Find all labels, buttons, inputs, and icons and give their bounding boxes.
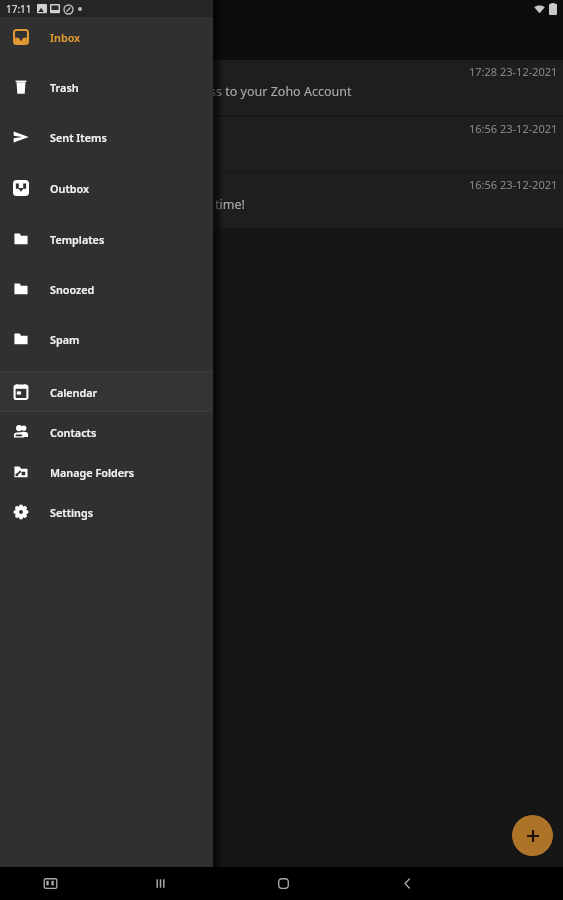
staticText: Contacts	[50, 425, 97, 440]
button[interactable]: Sent Items	[0, 117, 213, 157]
button[interactable]: Contacts	[0, 412, 213, 452]
button[interactable]: 16:56 23-12-2021	[0, 173, 563, 228]
button[interactable]: Settings	[0, 492, 213, 532]
staticText: 16:56 23-12-2021	[469, 177, 558, 192]
staticText: Sent Items	[50, 130, 107, 145]
staticText: Templates	[50, 232, 105, 247]
button[interactable]: Trash	[0, 67, 213, 107]
button[interactable]: 16:56 23-12-2021	[0, 117, 563, 172]
button[interactable]: 17:28 23-12-2021	[0, 60, 563, 115]
button[interactable]: Snoozed	[0, 269, 213, 309]
staticText: Settings	[50, 505, 94, 520]
button[interactable]: Outbox	[0, 168, 213, 208]
staticText: Spam	[50, 332, 80, 347]
staticText: Trash	[50, 80, 79, 95]
button[interactable]: Compose	[512, 815, 553, 856]
staticText: Access to your Zoho Account	[183, 83, 352, 100]
button[interactable]: Recents	[144, 867, 176, 900]
staticText: Manage Folders	[50, 465, 135, 480]
button[interactable]: Calendar	[0, 372, 213, 412]
button[interactable]: Home	[267, 867, 299, 900]
staticText: 16:56 23-12-2021	[469, 121, 558, 136]
staticText: Inbox	[50, 30, 81, 45]
button[interactable]: Templates	[0, 219, 213, 259]
staticText: Outbox	[50, 181, 90, 196]
button[interactable]: Back	[391, 867, 423, 900]
staticText: Snoozed	[50, 282, 95, 297]
staticText: Calendar	[50, 385, 98, 400]
button[interactable]: Spam	[0, 319, 213, 359]
button[interactable]: Manage Folders	[0, 452, 213, 492]
button[interactable]: Inbox	[0, 17, 213, 57]
staticText: 17:28 23-12-2021	[469, 64, 558, 79]
button[interactable]: Screenshot	[34, 867, 66, 900]
staticText: 17:11	[6, 2, 32, 16]
staticText: Happy holiday time!	[128, 196, 245, 213]
